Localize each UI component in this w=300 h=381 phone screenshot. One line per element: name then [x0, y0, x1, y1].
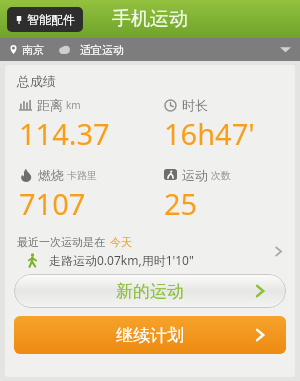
- staticText: 手机运动: [112, 7, 188, 31]
- staticText: 走路运动0.07km,用时1'10": [49, 252, 194, 268]
- staticText: 今天: [110, 235, 132, 249]
- button[interactable]: 新的运动: [14, 274, 286, 308]
- staticText: 适宜运动: [80, 43, 124, 57]
- staticText: 继续计划: [116, 325, 184, 346]
- staticText: 运动: [182, 167, 208, 183]
- staticText: 次数: [211, 169, 231, 182]
- staticText: 新的运动: [116, 281, 184, 302]
- staticText: km: [66, 98, 81, 112]
- staticText: 25: [164, 184, 198, 223]
- staticText: 总成绩: [17, 73, 56, 89]
- button[interactable]: 南京: [0, 38, 300, 61]
- staticText: 114.37: [19, 114, 110, 153]
- staticText: 距离: [37, 97, 63, 113]
- staticText: 卡路里: [67, 169, 97, 182]
- staticText: 时长: [182, 97, 208, 113]
- button[interactable]: 最近一次运动是在: [5, 235, 295, 268]
- button[interactable]: 继续计划: [14, 316, 286, 354]
- staticText: 燃烧: [38, 167, 64, 183]
- button[interactable]: 智能配件: [7, 7, 83, 32]
- staticText: 最近一次运动是在: [17, 235, 105, 249]
- staticText: 智能配件: [27, 12, 75, 27]
- staticText: 16h47': [164, 114, 255, 153]
- staticText: 7107: [19, 184, 86, 223]
- staticText: 南京: [22, 43, 44, 57]
